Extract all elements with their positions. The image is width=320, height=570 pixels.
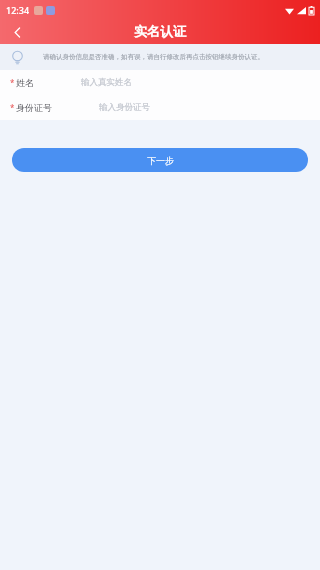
staticText: 请确认身份信息是否准确，如有误，请自行修改后再点击按钮继续身份认证。 [43,53,264,61]
button[interactable]: * [0,95,320,120]
staticText: 下一步 [147,155,174,166]
staticText: * [10,102,15,113]
staticText: 输入真实姓名 [81,77,132,88]
button[interactable]: Back [0,20,34,44]
staticText: 12:34 [6,4,30,16]
staticText: 输入身份证号 [99,102,150,113]
staticText: * [10,77,15,88]
button[interactable]: 下一步 [12,148,308,172]
staticText: 姓名 [16,77,34,88]
staticText: 身份证号 [16,102,52,113]
staticText: 实名认证 [134,23,186,39]
button[interactable]: * [0,70,320,95]
